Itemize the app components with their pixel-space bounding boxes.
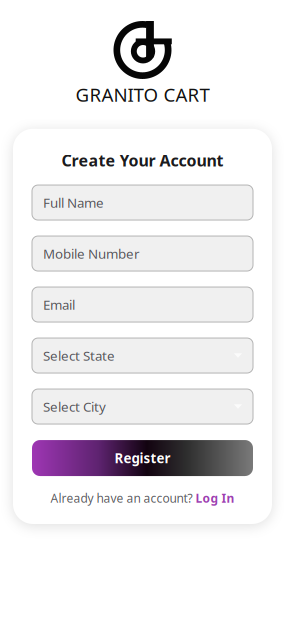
staticText: Log In bbox=[195, 490, 234, 506]
staticText: Register bbox=[114, 449, 170, 467]
staticText: Mobile Number bbox=[43, 245, 140, 262]
staticText: Create Your Account bbox=[61, 150, 223, 171]
button[interactable]: Mobile Number bbox=[32, 236, 253, 271]
staticText: Select City bbox=[43, 398, 106, 415]
button[interactable]: Already have an account? bbox=[50, 490, 234, 506]
staticText: Email bbox=[43, 296, 75, 313]
staticText: GRANITO CART bbox=[75, 82, 209, 107]
staticText: Already have an account? bbox=[50, 490, 192, 506]
button[interactable]: Select State bbox=[32, 338, 253, 373]
button[interactable]: Register bbox=[32, 440, 253, 476]
button[interactable]: Full Name bbox=[32, 185, 253, 220]
staticText: Select State bbox=[43, 347, 115, 364]
staticText: Full Name bbox=[43, 194, 104, 211]
button[interactable]: Email bbox=[32, 287, 253, 322]
button[interactable]: Select City bbox=[32, 389, 253, 424]
